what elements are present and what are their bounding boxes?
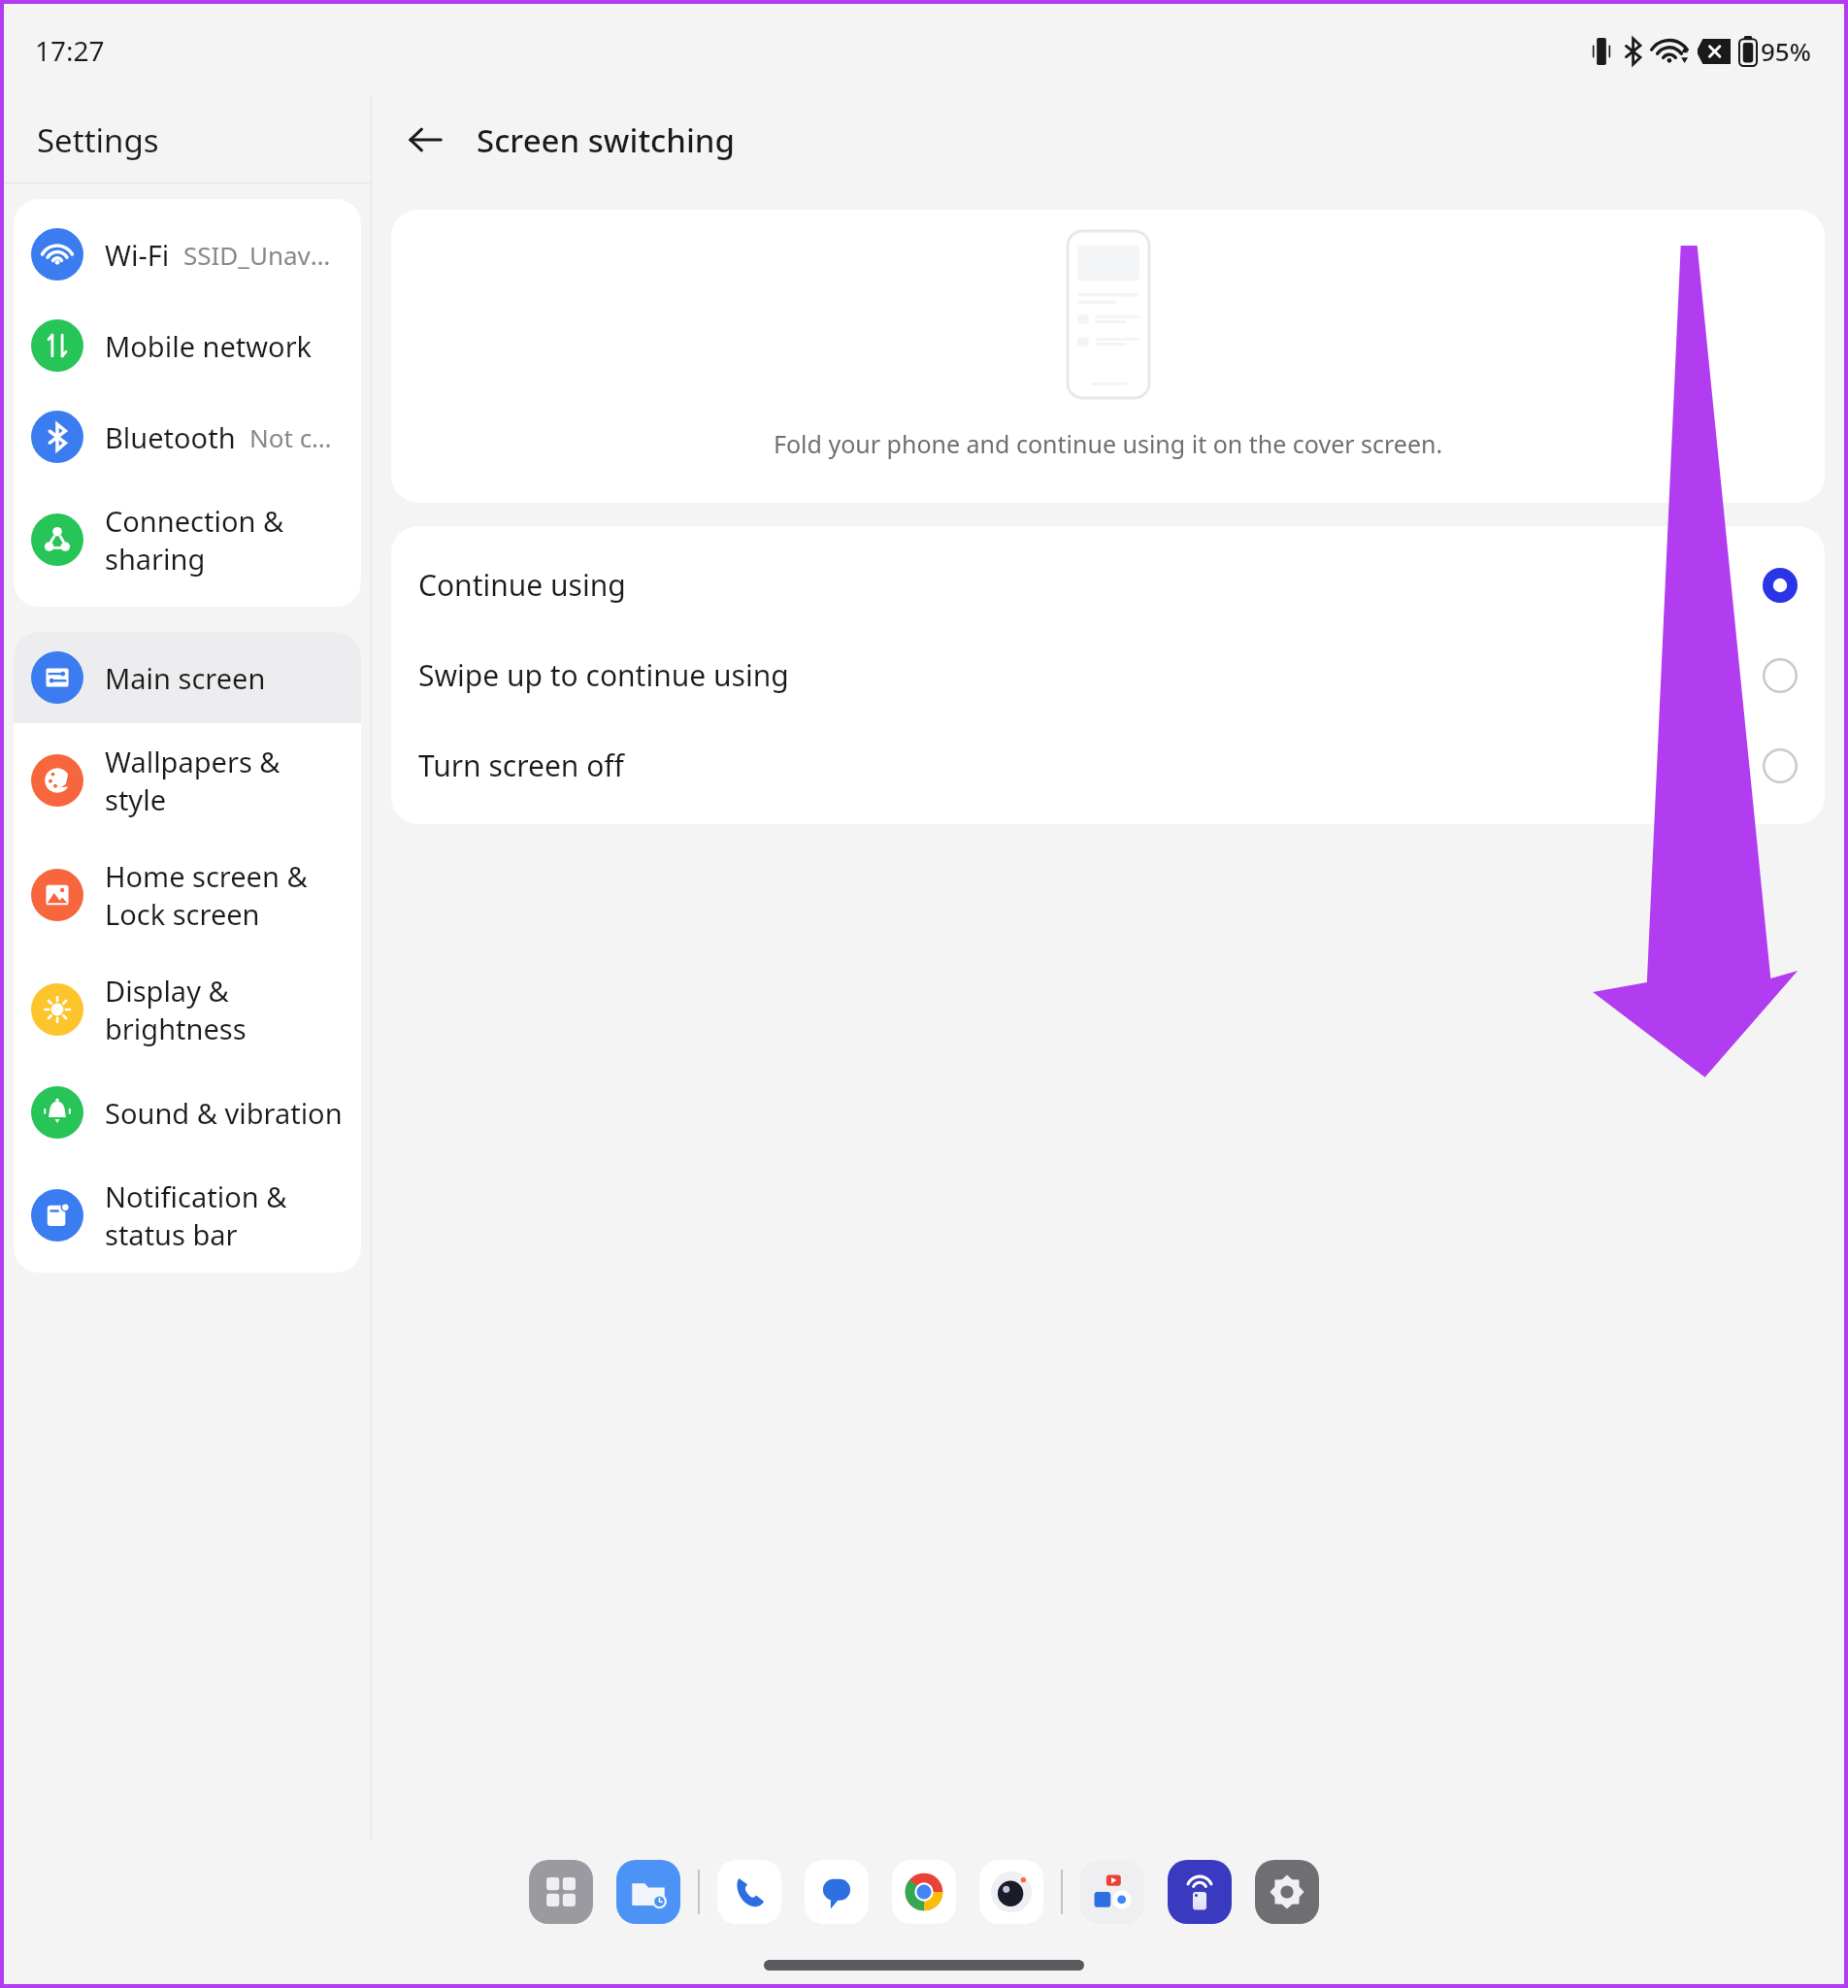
staticText: Connection & sharing	[105, 502, 344, 578]
staticText: Main screen	[105, 659, 266, 697]
staticText: Display & brightness	[105, 972, 344, 1047]
staticText: Not connec…	[249, 420, 344, 454]
button[interactable]: Mobile network	[14, 300, 361, 391]
button[interactable]: messages	[805, 1860, 869, 1924]
staticText: Sound & vibration	[105, 1094, 343, 1132]
button[interactable]: Wi-Fi	[14, 209, 361, 300]
staticText: Mobile network	[105, 327, 313, 365]
button[interactable]: apps	[529, 1860, 593, 1924]
staticText: Continue using	[418, 565, 1763, 605]
button[interactable]: phone	[717, 1860, 781, 1924]
staticText: Screen switching	[477, 118, 735, 162]
button[interactable]: chrome	[892, 1860, 956, 1924]
button[interactable]: Bluetooth	[14, 391, 361, 482]
staticText: 95%	[1761, 34, 1811, 68]
staticText: Wallpapers & style	[105, 743, 344, 818]
staticText: SSID_Unavailable	[183, 238, 344, 272]
button[interactable]: files	[616, 1860, 680, 1924]
staticText: 17:27	[35, 32, 105, 69]
button[interactable]: Display & brightness	[14, 952, 361, 1067]
staticText: Notification & status bar	[105, 1177, 344, 1253]
button[interactable]: Swipe up to continue using	[391, 630, 1825, 720]
staticText: Bluetooth	[105, 418, 236, 456]
button[interactable]: folder	[1080, 1860, 1144, 1924]
button[interactable]: Continue using	[391, 540, 1825, 630]
staticText: Wi-Fi	[105, 236, 170, 274]
staticText: Home screen & Lock screen	[105, 857, 344, 933]
button[interactable]: camera	[979, 1860, 1043, 1924]
staticText: Turn screen off	[418, 745, 1763, 785]
button[interactable]: Sound & vibration	[14, 1067, 361, 1158]
button[interactable]: cast	[1168, 1860, 1232, 1924]
staticText: Fold your phone and continue using it on…	[774, 427, 1443, 460]
staticText: Swipe up to continue using	[418, 655, 1763, 695]
button[interactable]: Notification & status bar	[14, 1158, 361, 1273]
staticText: Settings	[37, 118, 159, 162]
button[interactable]: Home screen & Lock screen	[14, 838, 361, 952]
button[interactable]: Main screen	[14, 632, 361, 723]
button[interactable]: Wallpapers & style	[14, 723, 361, 838]
button[interactable]: Connection & sharing	[14, 482, 361, 597]
button[interactable]: Turn screen off	[391, 720, 1825, 811]
button[interactable]: settings	[1255, 1860, 1319, 1924]
button[interactable]: Back	[393, 108, 457, 172]
